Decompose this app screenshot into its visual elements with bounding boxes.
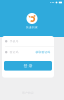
button[interactable]: 获取验证码	[35, 50, 50, 54]
button[interactable]: 登 录	[4, 61, 52, 71]
button[interactable]: 用户协议	[22, 91, 34, 94]
staticText: 用户协议	[22, 91, 34, 94]
staticText: 获取验证码	[35, 50, 50, 54]
staticText: 登 录	[23, 63, 32, 68]
staticText: 验证码	[10, 50, 19, 54]
staticText: 手机号	[10, 40, 19, 43]
staticText: 快递到家	[26, 26, 38, 29]
